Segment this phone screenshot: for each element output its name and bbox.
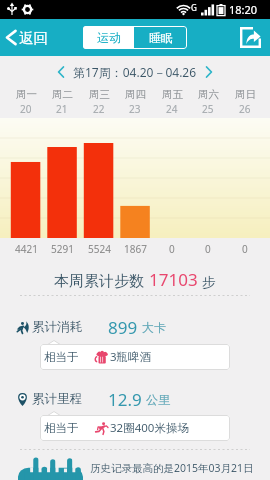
staticText: 0 <box>205 242 211 256</box>
staticText: 26 <box>239 102 251 116</box>
staticText: 17103 <box>149 268 198 291</box>
staticText: 24 <box>166 102 178 116</box>
staticText: 22 <box>93 102 105 116</box>
staticText: 0 <box>169 242 175 256</box>
staticText: 睡眠 <box>149 30 173 45</box>
staticText: 周日 <box>235 88 256 101</box>
staticText: 周六 <box>198 88 219 101</box>
staticText: G <box>191 2 197 13</box>
staticText: 步 <box>202 274 216 291</box>
staticText: 899 <box>108 316 138 338</box>
staticText: 运动 <box>97 30 121 45</box>
staticText: 20 <box>20 102 32 116</box>
staticText: 周五 <box>162 88 183 101</box>
staticText: 历史记录最高的是2015年03月21日 <box>90 461 254 475</box>
staticText: 25 <box>202 102 214 116</box>
staticText: 相当于 <box>44 350 79 364</box>
staticText: 0 <box>242 242 248 256</box>
button[interactable]: 睡眠 <box>134 26 187 49</box>
button[interactable]: Share <box>231 19 270 56</box>
staticText: 周一 <box>16 88 37 101</box>
staticText: 返回 <box>19 29 48 47</box>
staticText: 1867 <box>124 242 147 256</box>
staticText: 大卡 <box>142 320 166 335</box>
button[interactable]: 运动 <box>83 26 134 49</box>
button[interactable]: 相当于 <box>40 415 230 441</box>
staticText: 5524 <box>88 242 111 256</box>
staticText: 公里 <box>146 392 170 407</box>
staticText: 周四 <box>125 88 146 101</box>
staticText: 32圈400米操场 <box>110 420 189 436</box>
button[interactable]: Previous week <box>53 61 69 83</box>
staticText: 本周累计步数 <box>54 272 144 291</box>
button[interactable]: Next week <box>201 61 217 83</box>
staticText: 3瓶啤酒 <box>110 349 152 365</box>
staticText: 5291 <box>51 242 74 256</box>
staticText: 第17周：04.20－04.26 <box>73 64 197 80</box>
button[interactable]: 相当于 <box>40 344 230 370</box>
staticText: 周三 <box>89 88 110 101</box>
staticText: 23 <box>129 102 141 116</box>
staticText: 累计里程 <box>32 391 82 407</box>
button[interactable]: 返回 <box>0 19 54 56</box>
staticText: 18:20 <box>229 2 258 17</box>
staticText: 相当于 <box>44 421 79 435</box>
staticText: 累计消耗 <box>32 319 82 335</box>
staticText: 周二 <box>52 88 73 101</box>
staticText: 4421 <box>15 242 38 256</box>
staticText: 21 <box>56 102 68 116</box>
staticText: 12.9 <box>108 388 142 410</box>
